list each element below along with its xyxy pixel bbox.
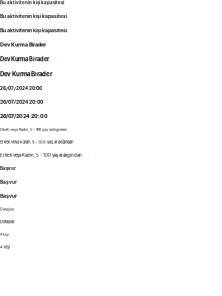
staticText: Erkek veya Kadın, 5 - 100 yaş aralığında… xyxy=(0,152,82,158)
staticText: Başvur xyxy=(0,193,17,199)
staticText: 26/07/2024 20:00 xyxy=(0,113,48,119)
staticText: Dev Kurma Birader xyxy=(0,41,46,48)
staticText: Dev Kurma Birader xyxy=(0,70,52,78)
staticText: Dev Kurma Birader xyxy=(0,56,49,62)
staticText: Erkek veya Kadın, 5 - 100 yaş aralığında… xyxy=(0,139,73,144)
staticText: Bu aktivitenin kişi kapasitesi xyxy=(0,0,64,5)
staticText: 26/07/2024 20:00 xyxy=(0,99,43,105)
staticText: Erkek veya Kadın, 5 - 100 yaş aralığında… xyxy=(0,127,67,132)
staticText: Bu aktivitenin kişi kapasitesi xyxy=(0,13,67,19)
staticText: Bu aktivitenin kişi kapasitesi xyxy=(0,27,67,33)
staticText: Başvur xyxy=(0,166,16,171)
staticText: Detaylar xyxy=(0,219,15,224)
staticText: 4 kişi xyxy=(0,245,10,249)
staticText: Başvur xyxy=(0,179,17,185)
staticText: Detaylar xyxy=(0,207,14,211)
staticText: 26/07/2024 20:00 xyxy=(0,86,42,91)
staticText: 4 kişi xyxy=(0,232,9,237)
